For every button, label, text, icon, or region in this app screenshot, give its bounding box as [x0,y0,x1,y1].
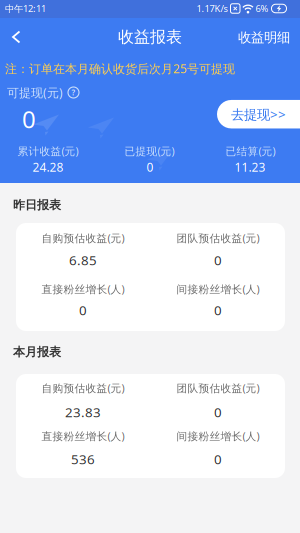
button[interactable]: 说明 [68,87,79,98]
staticText: 已提现(元) [124,144,174,158]
staticText: 昨日报表 [13,198,61,212]
staticText: 中午12:11 [5,2,46,15]
staticText: 0 [214,301,222,319]
staticText: 6% [255,2,268,15]
staticText: 11.23 [234,159,265,175]
button[interactable]: 收益明细 [238,23,290,52]
staticText: 团队预估收益(元) [176,381,259,395]
staticText: 注：订单在本月确认收货后次月25号可提现 [5,60,235,76]
staticText: 收益报表 [118,27,182,47]
staticText: 直接粉丝增长(人) [41,429,124,443]
staticText: 去提现>> [231,105,286,123]
staticText: 收益明细 [238,29,290,46]
staticText: 0 [79,301,87,319]
staticText: 6.85 [69,251,97,269]
staticText: 23.83 [65,403,101,421]
staticText: 0 [146,159,153,175]
staticText: 自购预估收益(元) [41,381,124,395]
staticText: 可提现(元) [7,84,63,100]
staticText: 24.28 [32,159,63,175]
staticText: ? [71,87,75,98]
staticText: 间接粉丝增长(人) [176,429,259,443]
staticText: 直接粉丝增长(人) [41,282,124,296]
staticText: 累计收益(元) [17,144,78,158]
button[interactable]: 去提现>> [217,100,300,128]
staticText: 0 [214,403,222,421]
staticText: 团队预估收益(元) [176,231,259,245]
staticText: 0 [214,251,222,269]
staticText: 0 [214,450,222,468]
staticText: 间接粉丝增长(人) [176,282,259,296]
staticText: 1.17K/s [196,2,227,15]
staticText: 自购预估收益(元) [41,231,124,245]
staticText: 0 [22,103,36,135]
button[interactable]: 返回 [5,24,27,49]
staticText: 本月报表 [13,345,61,359]
staticText: 536 [71,450,95,468]
staticText: 已结算(元) [225,144,275,158]
